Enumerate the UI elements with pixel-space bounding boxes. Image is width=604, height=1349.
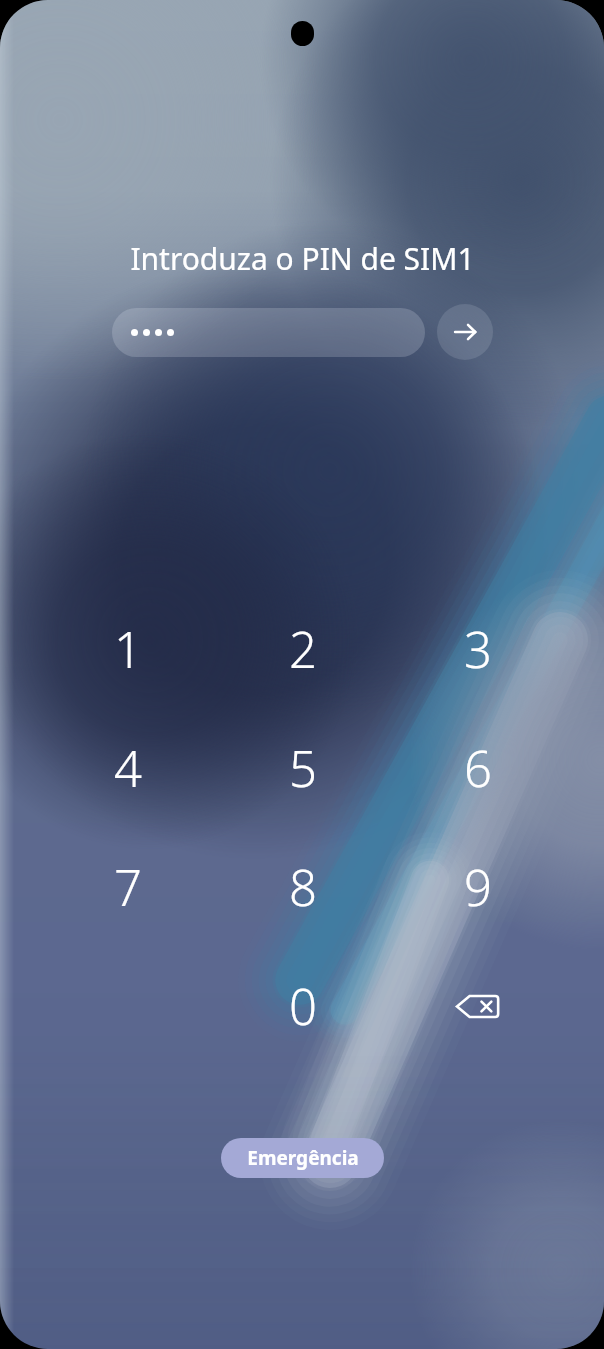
staticText: 7 — [114, 854, 142, 921]
button[interactable]: 6 — [390, 709, 565, 828]
button[interactable]: 4 — [40, 709, 215, 828]
button[interactable]: 8 — [215, 828, 390, 947]
button[interactable]: 0 — [215, 947, 390, 1066]
button[interactable]: Apagar — [390, 947, 565, 1066]
button[interactable]: 5 — [215, 709, 390, 828]
staticText: 8 — [289, 854, 317, 921]
button[interactable]: Emergência — [221, 1138, 384, 1178]
staticText: 1 — [114, 616, 142, 683]
staticText: 2 — [289, 616, 317, 683]
staticText: 9 — [464, 854, 492, 921]
staticText: Introduza o PIN de SIM1 — [130, 238, 475, 279]
staticText: Emergência — [247, 1145, 359, 1171]
staticText: 0 — [289, 973, 317, 1040]
staticText: 4 — [114, 735, 142, 802]
staticText: 5 — [289, 735, 317, 802]
button[interactable]: Confirmar PIN — [437, 304, 493, 360]
button[interactable] — [112, 308, 425, 357]
button[interactable]: 2 — [215, 590, 390, 709]
staticText: 3 — [464, 616, 492, 683]
staticText: 6 — [464, 735, 492, 802]
button[interactable]: 9 — [390, 828, 565, 947]
button[interactable]: 1 — [40, 590, 215, 709]
button[interactable]: 7 — [40, 828, 215, 947]
button[interactable]: 3 — [390, 590, 565, 709]
